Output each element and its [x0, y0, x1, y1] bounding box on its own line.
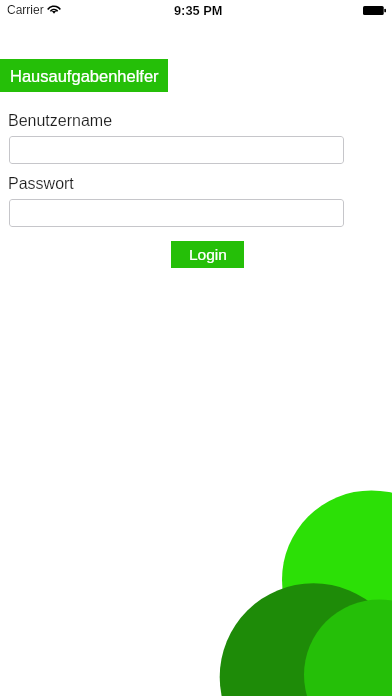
staticText: Hausaufgabenhelfer [10, 67, 159, 85]
button[interactable]: Benutzername eingeben [9, 136, 344, 164]
staticText: Benutzername [8, 112, 113, 130]
staticText: 9:35 PM [174, 3, 223, 17]
other: Wi-Fi signal [48, 4, 60, 14]
staticText: Passwort [8, 175, 74, 193]
button[interactable]: Login [171, 241, 244, 268]
other: Battery full [363, 6, 386, 15]
button[interactable]: Hausaufgabenhelfer [0, 59, 168, 92]
button[interactable]: Passwort eingeben [9, 199, 344, 227]
staticText: Login [189, 246, 227, 263]
staticText: Carrier [7, 3, 44, 16]
